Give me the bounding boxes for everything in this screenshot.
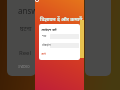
staticText: answ [18, 5, 36, 16]
staticText: Reel [19, 49, 32, 57]
staticText: 3 VIDEO [18, 65, 30, 69]
button[interactable] [85, 0, 111, 76]
button[interactable]: answ [7, 0, 36, 76]
staticText: नाम [42, 34, 47, 38]
staticText: आगे [41, 52, 46, 56]
staticText: घटना [20, 25, 32, 33]
staticText: मोबाईल [42, 43, 51, 47]
button[interactable]: विज्ञापन दें और कमाएँ [35, 0, 84, 90]
staticText: आवेदन करें [41, 27, 57, 32]
staticText: विज्ञापन दें और कमाएँ [40, 16, 83, 23]
